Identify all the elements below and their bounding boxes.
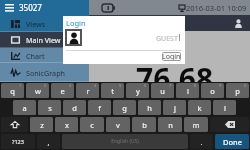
staticText: ,	[47, 137, 50, 147]
button[interactable]: Done	[215, 134, 249, 149]
button[interactable]: Account	[232, 17, 245, 29]
staticText: t	[111, 86, 114, 96]
staticText: 7	[169, 83, 172, 88]
button[interactable]: b	[132, 117, 156, 132]
button[interactable]: User avatar	[65, 29, 82, 46]
button[interactable]: Main View	[0, 32, 89, 48]
staticText: 6	[144, 83, 147, 88]
staticText: a	[22, 103, 27, 113]
button[interactable]: ,	[37, 134, 60, 149]
staticText: q	[10, 86, 15, 96]
staticText: Login	[66, 18, 86, 28]
staticText: w	[35, 86, 41, 96]
button[interactable]: y	[126, 83, 149, 98]
staticText: 9	[219, 83, 222, 88]
staticText: 2016-03-01 10:09	[186, 3, 247, 13]
staticText: x	[65, 120, 69, 130]
staticText: z	[40, 120, 44, 130]
button[interactable]: a	[13, 100, 36, 115]
staticText: u	[160, 86, 165, 96]
button[interactable]: Menu	[0, 0, 89, 15]
staticText: Views	[26, 19, 46, 29]
button[interactable]: z	[30, 117, 53, 132]
staticText: h	[147, 103, 152, 113]
button[interactable]: p	[226, 83, 249, 98]
staticText: English (US)	[111, 138, 139, 145]
button[interactable]: u	[151, 83, 174, 98]
staticText: p	[235, 86, 240, 96]
staticText: 1	[19, 83, 22, 88]
button[interactable]: l	[213, 100, 236, 115]
staticText: Chart	[26, 51, 45, 61]
button[interactable]: s	[38, 100, 61, 115]
button[interactable]: Shift	[1, 117, 28, 132]
staticText: b	[142, 120, 147, 130]
button[interactable]: d	[63, 100, 86, 115]
staticText: .	[200, 137, 203, 147]
staticText: i	[187, 86, 189, 96]
button[interactable]: e	[51, 83, 74, 98]
staticText: GUEST	[156, 34, 178, 44]
button[interactable]: w	[26, 83, 49, 98]
staticText: d	[72, 103, 77, 113]
staticText: 3	[69, 83, 72, 88]
staticText: ?123	[12, 138, 24, 145]
staticText: SonicGraph	[26, 68, 65, 78]
staticText: f	[98, 103, 101, 113]
staticText: 76.68	[136, 58, 214, 99]
button[interactable]: Chart	[0, 48, 89, 63]
button[interactable]: i	[176, 83, 199, 98]
button[interactable]: t	[101, 83, 124, 98]
staticText: r	[86, 86, 90, 96]
staticText: 35027	[19, 2, 42, 13]
button[interactable]: v	[106, 117, 130, 132]
button[interactable]: c	[80, 117, 104, 132]
staticText: y	[136, 86, 140, 96]
staticText: k	[197, 103, 202, 113]
button[interactable]: Login	[162, 52, 181, 61]
button[interactable]: r	[76, 83, 99, 98]
staticText: 0	[244, 83, 247, 88]
staticText: 2	[44, 83, 47, 88]
staticText: s	[48, 103, 52, 113]
staticText: 5	[119, 83, 122, 88]
staticText: o	[210, 86, 215, 96]
staticText: l	[224, 103, 226, 113]
staticText: Done	[223, 137, 242, 147]
button[interactable]: f	[88, 100, 111, 115]
button[interactable]: k	[188, 100, 211, 115]
button[interactable]: o	[201, 83, 224, 98]
staticText: v	[116, 120, 120, 130]
button[interactable]: English (US)	[62, 134, 188, 149]
staticText: j	[174, 103, 176, 113]
staticText: e	[60, 86, 65, 96]
staticText: Login	[162, 52, 181, 61]
button[interactable]: Views	[0, 15, 89, 32]
button[interactable]: x	[55, 117, 78, 132]
button[interactable]: ?123	[1, 134, 35, 149]
button[interactable]: SonicGraph	[0, 63, 89, 82]
button[interactable]: .	[190, 134, 213, 149]
button[interactable]: Backspace	[210, 117, 249, 132]
button[interactable]: j	[163, 100, 186, 115]
staticText: 4	[94, 83, 97, 88]
staticText: c	[90, 120, 94, 130]
button[interactable]: q	[1, 83, 24, 98]
button[interactable]: n	[158, 117, 182, 132]
staticText: Main View	[26, 35, 61, 45]
button[interactable]: m	[184, 117, 208, 132]
staticText: g	[122, 103, 127, 113]
button[interactable]: h	[138, 100, 161, 115]
staticText: m	[192, 120, 200, 130]
button[interactable]: g	[113, 100, 136, 115]
staticText: 8	[194, 83, 197, 88]
staticText: n	[168, 120, 173, 130]
